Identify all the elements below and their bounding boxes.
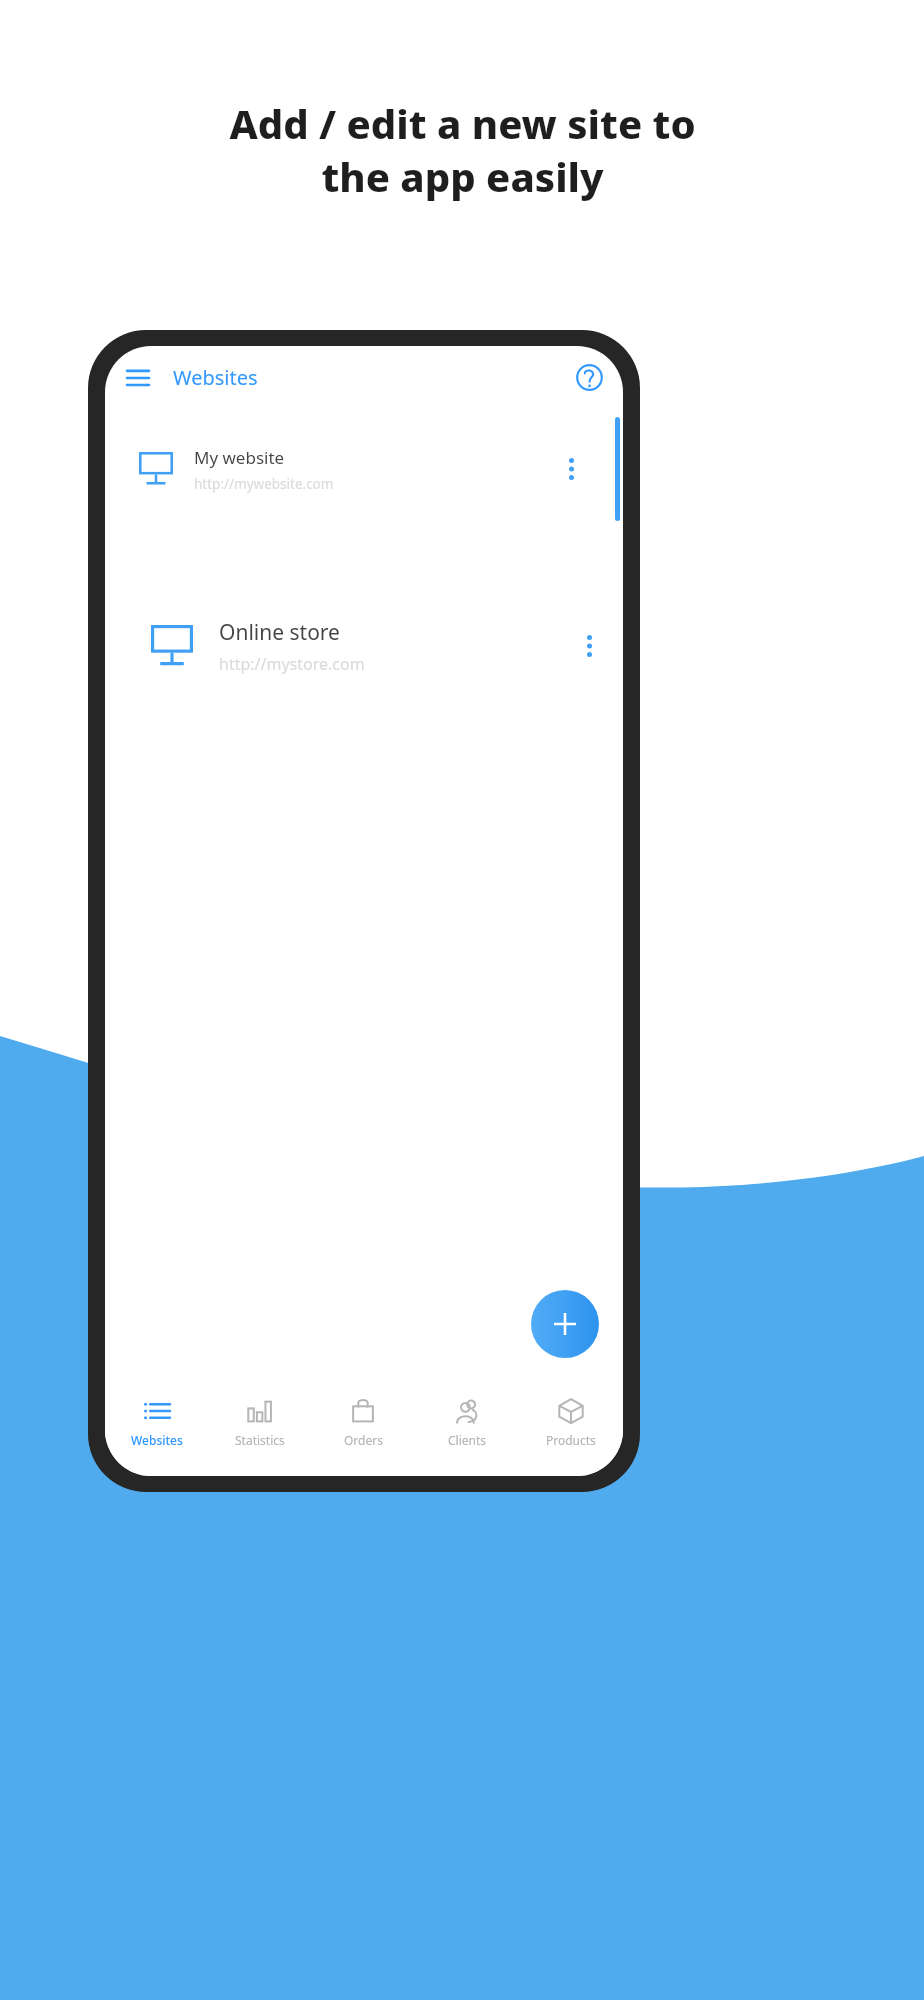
button[interactable]: Online store xyxy=(115,581,623,711)
staticText: Clients xyxy=(448,1432,487,1448)
button[interactable]: Orders xyxy=(311,1384,415,1476)
button[interactable]: Websites xyxy=(105,1384,208,1476)
button[interactable]: More options for My website xyxy=(553,451,589,487)
button[interactable]: Add site xyxy=(531,1290,599,1358)
staticText: My website xyxy=(194,446,285,469)
staticText: http://mystore.com xyxy=(219,653,365,675)
button[interactable]: Clients xyxy=(415,1384,519,1476)
staticText: http://mywebsite.com xyxy=(194,475,334,493)
staticText: Add / edit a new site to the app easily xyxy=(229,96,696,204)
staticText: Products xyxy=(546,1432,596,1448)
button[interactable]: Open navigation menu xyxy=(121,360,155,394)
staticText: Orders xyxy=(344,1432,383,1448)
button[interactable]: Help xyxy=(569,357,609,397)
staticText: Online store xyxy=(219,618,340,647)
staticText: Websites xyxy=(131,1432,183,1448)
button[interactable]: My website xyxy=(109,419,605,519)
staticText: Websites xyxy=(173,364,258,391)
staticText: Statistics xyxy=(235,1432,285,1448)
button[interactable]: More options for Online store xyxy=(571,628,607,664)
button[interactable]: Products xyxy=(519,1384,623,1476)
button[interactable]: Statistics xyxy=(208,1384,311,1476)
